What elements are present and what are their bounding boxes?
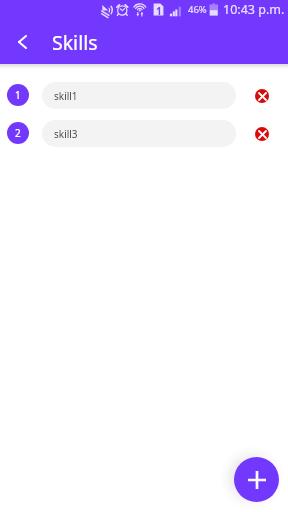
staticText: skill1: [54, 89, 78, 103]
button[interactable]: Add: [234, 457, 279, 502]
staticText: skill3: [54, 127, 78, 141]
button[interactable]: skill1: [42, 82, 236, 109]
staticText: 46%: [188, 3, 207, 16]
staticText: 10:43 p.m.: [223, 1, 285, 18]
button[interactable]: Delete: [255, 127, 269, 141]
staticText: 1: [156, 4, 162, 17]
button[interactable]: Back: [8, 28, 36, 56]
staticText: 1: [15, 88, 21, 102]
staticText: 2: [15, 126, 21, 140]
button[interactable]: skill3: [42, 120, 236, 147]
button[interactable]: Delete: [255, 89, 269, 103]
staticText: Skills: [52, 29, 98, 56]
